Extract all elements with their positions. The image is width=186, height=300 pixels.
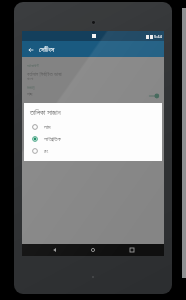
button[interactable]: সাম্প্রতিক <box>24 133 162 145</box>
staticText: 5:44 <box>154 34 162 39</box>
staticText: তালিকা সাজান <box>27 112 49 119</box>
staticText: অ্যাকাউন্ট <box>27 64 39 68</box>
button[interactable]: Back <box>25 44 36 55</box>
staticText: শব্দ <box>27 92 33 97</box>
staticText: রং <box>44 148 49 154</box>
button[interactable]: Back <box>49 244 61 256</box>
button[interactable]: নাম <box>24 121 162 133</box>
staticText: সেটিংস <box>39 46 55 53</box>
button[interactable]: বর্তমান নির্বাচিত ভাষা <box>22 69 164 83</box>
button[interactable]: Home <box>87 244 99 256</box>
staticText: বর্তমান নির্বাচিত ভাষা <box>27 70 62 77</box>
button[interactable]: রং <box>24 145 162 157</box>
staticText: বাংলা <box>27 77 34 81</box>
button[interactable]: Recents <box>126 244 138 256</box>
staticText: নাম <box>44 124 51 130</box>
staticText: তালিকা সাজান <box>30 108 61 118</box>
staticText: সাম্প্রতিক <box>44 136 62 142</box>
staticText: বিজ্ঞপ্তি <box>27 86 35 90</box>
button[interactable]: শব্দ <box>22 91 164 102</box>
